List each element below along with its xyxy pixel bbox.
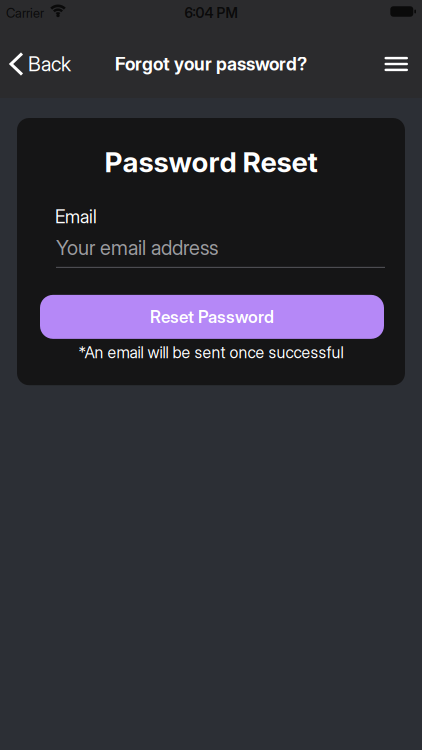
- button[interactable]: Menu: [384, 57, 422, 71]
- staticText: *An email will be sent once successful: [78, 343, 343, 362]
- staticText: Email: [55, 206, 97, 228]
- staticText: Back: [28, 52, 71, 76]
- staticText: Reset Password: [150, 307, 274, 327]
- staticText: Password Reset: [104, 145, 317, 179]
- staticText: 6:04 PM: [184, 4, 237, 21]
- staticText: Forgot your password?: [115, 53, 307, 75]
- staticText: Carrier: [6, 5, 44, 21]
- button[interactable]: Back: [0, 52, 71, 76]
- button[interactable]: Reset Password: [40, 295, 384, 339]
- staticText: Your email address: [56, 236, 218, 260]
